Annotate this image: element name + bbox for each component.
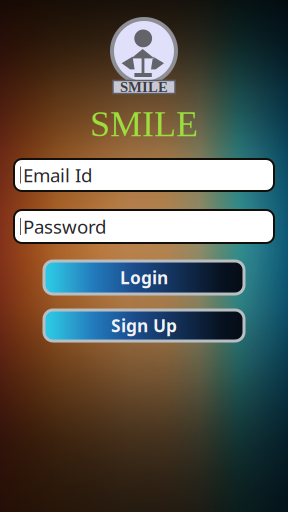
button[interactable]: Login — [44, 261, 244, 294]
staticText: Email Id — [23, 163, 92, 187]
staticText: Login — [120, 266, 168, 289]
staticText: SMILE — [90, 104, 198, 144]
staticText: Sign Up — [111, 314, 177, 337]
staticText: SMILE — [120, 79, 168, 95]
staticText: Password — [23, 214, 106, 239]
button[interactable]: Sign Up — [44, 310, 244, 341]
